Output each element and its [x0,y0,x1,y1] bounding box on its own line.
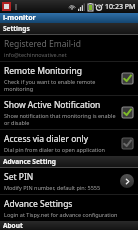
button[interactable]: Toggle [121,137,134,150]
staticText: Modify PIN number, default pin: 5555 [4,184,101,191]
button[interactable]: Toggle [121,72,134,85]
staticText: Registered Email-id [4,38,81,50]
button[interactable]: Show Active Notification [0,96,138,129]
staticText: Advance Setting [3,157,56,166]
staticText: Show Active Notification [4,99,101,111]
staticText: Remote Monitoring [4,65,82,77]
staticText: Login at Tispy.net for advance configura… [4,211,118,218]
staticText: Dial pin from dialer to open application [4,146,105,153]
staticText: Check if you want to enable remote monit… [4,78,117,92]
button[interactable]: Registered Email-id [0,35,138,61]
button[interactable]: Access via dialer only [0,130,138,156]
button[interactable]: Remote Monitoring [0,62,138,95]
button[interactable]: Set PIN [0,168,138,194]
staticText: i-monitor [3,13,36,23]
staticText: Settings [3,24,30,33]
staticText: Show notification that monitoring is ena… [4,112,117,126]
staticText: Set PIN [4,171,34,183]
button[interactable]: Advance Settings [0,195,138,221]
staticText: 10:23 PM [105,2,136,12]
staticText: Access via dialer only [4,133,89,145]
staticText: info@techinnovative.net [4,51,67,58]
button[interactable]: Toggle [121,106,134,119]
staticText: Advance Settings [4,198,73,210]
staticText: About [3,221,23,230]
button[interactable]: Set PIN [120,174,134,188]
